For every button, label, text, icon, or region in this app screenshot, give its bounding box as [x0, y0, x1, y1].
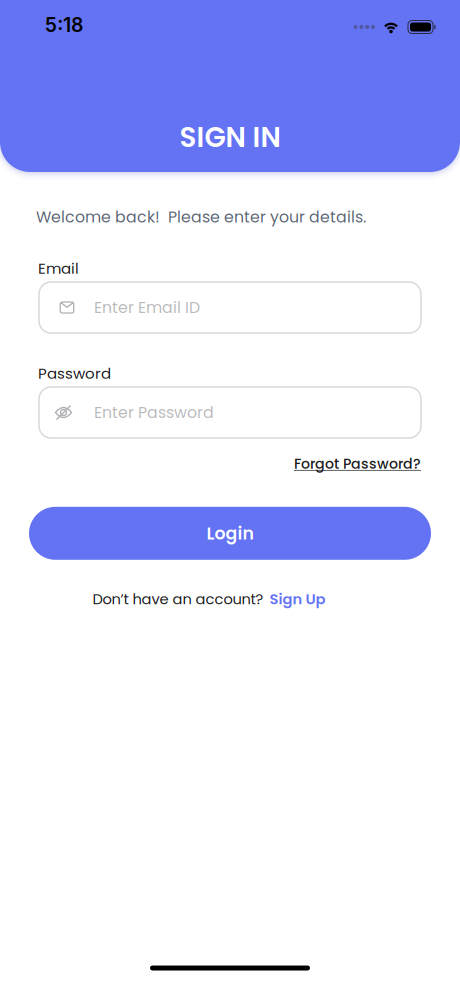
staticText: Enter Email ID: [94, 296, 200, 318]
staticText: Enter Password: [94, 401, 214, 423]
staticText: 5:18: [45, 13, 83, 37]
staticText: Login: [206, 521, 253, 545]
staticText: Email: [38, 258, 79, 279]
staticText: Welcome back! Please enter your details.: [36, 206, 366, 228]
staticText: Don’t have an account?: [92, 589, 263, 609]
button[interactable]: Enter Password: [39, 387, 421, 438]
button[interactable]: Login: [29, 507, 431, 560]
staticText: Sign Up: [269, 589, 325, 609]
button[interactable]: Forgot Password?: [294, 454, 421, 474]
staticText: Forgot Password?: [294, 454, 421, 474]
staticText: Password: [38, 363, 111, 384]
button[interactable]: Sign Up: [269, 589, 325, 609]
button[interactable]: Enter Email ID: [39, 282, 421, 333]
staticText: SIGN IN: [179, 118, 280, 157]
